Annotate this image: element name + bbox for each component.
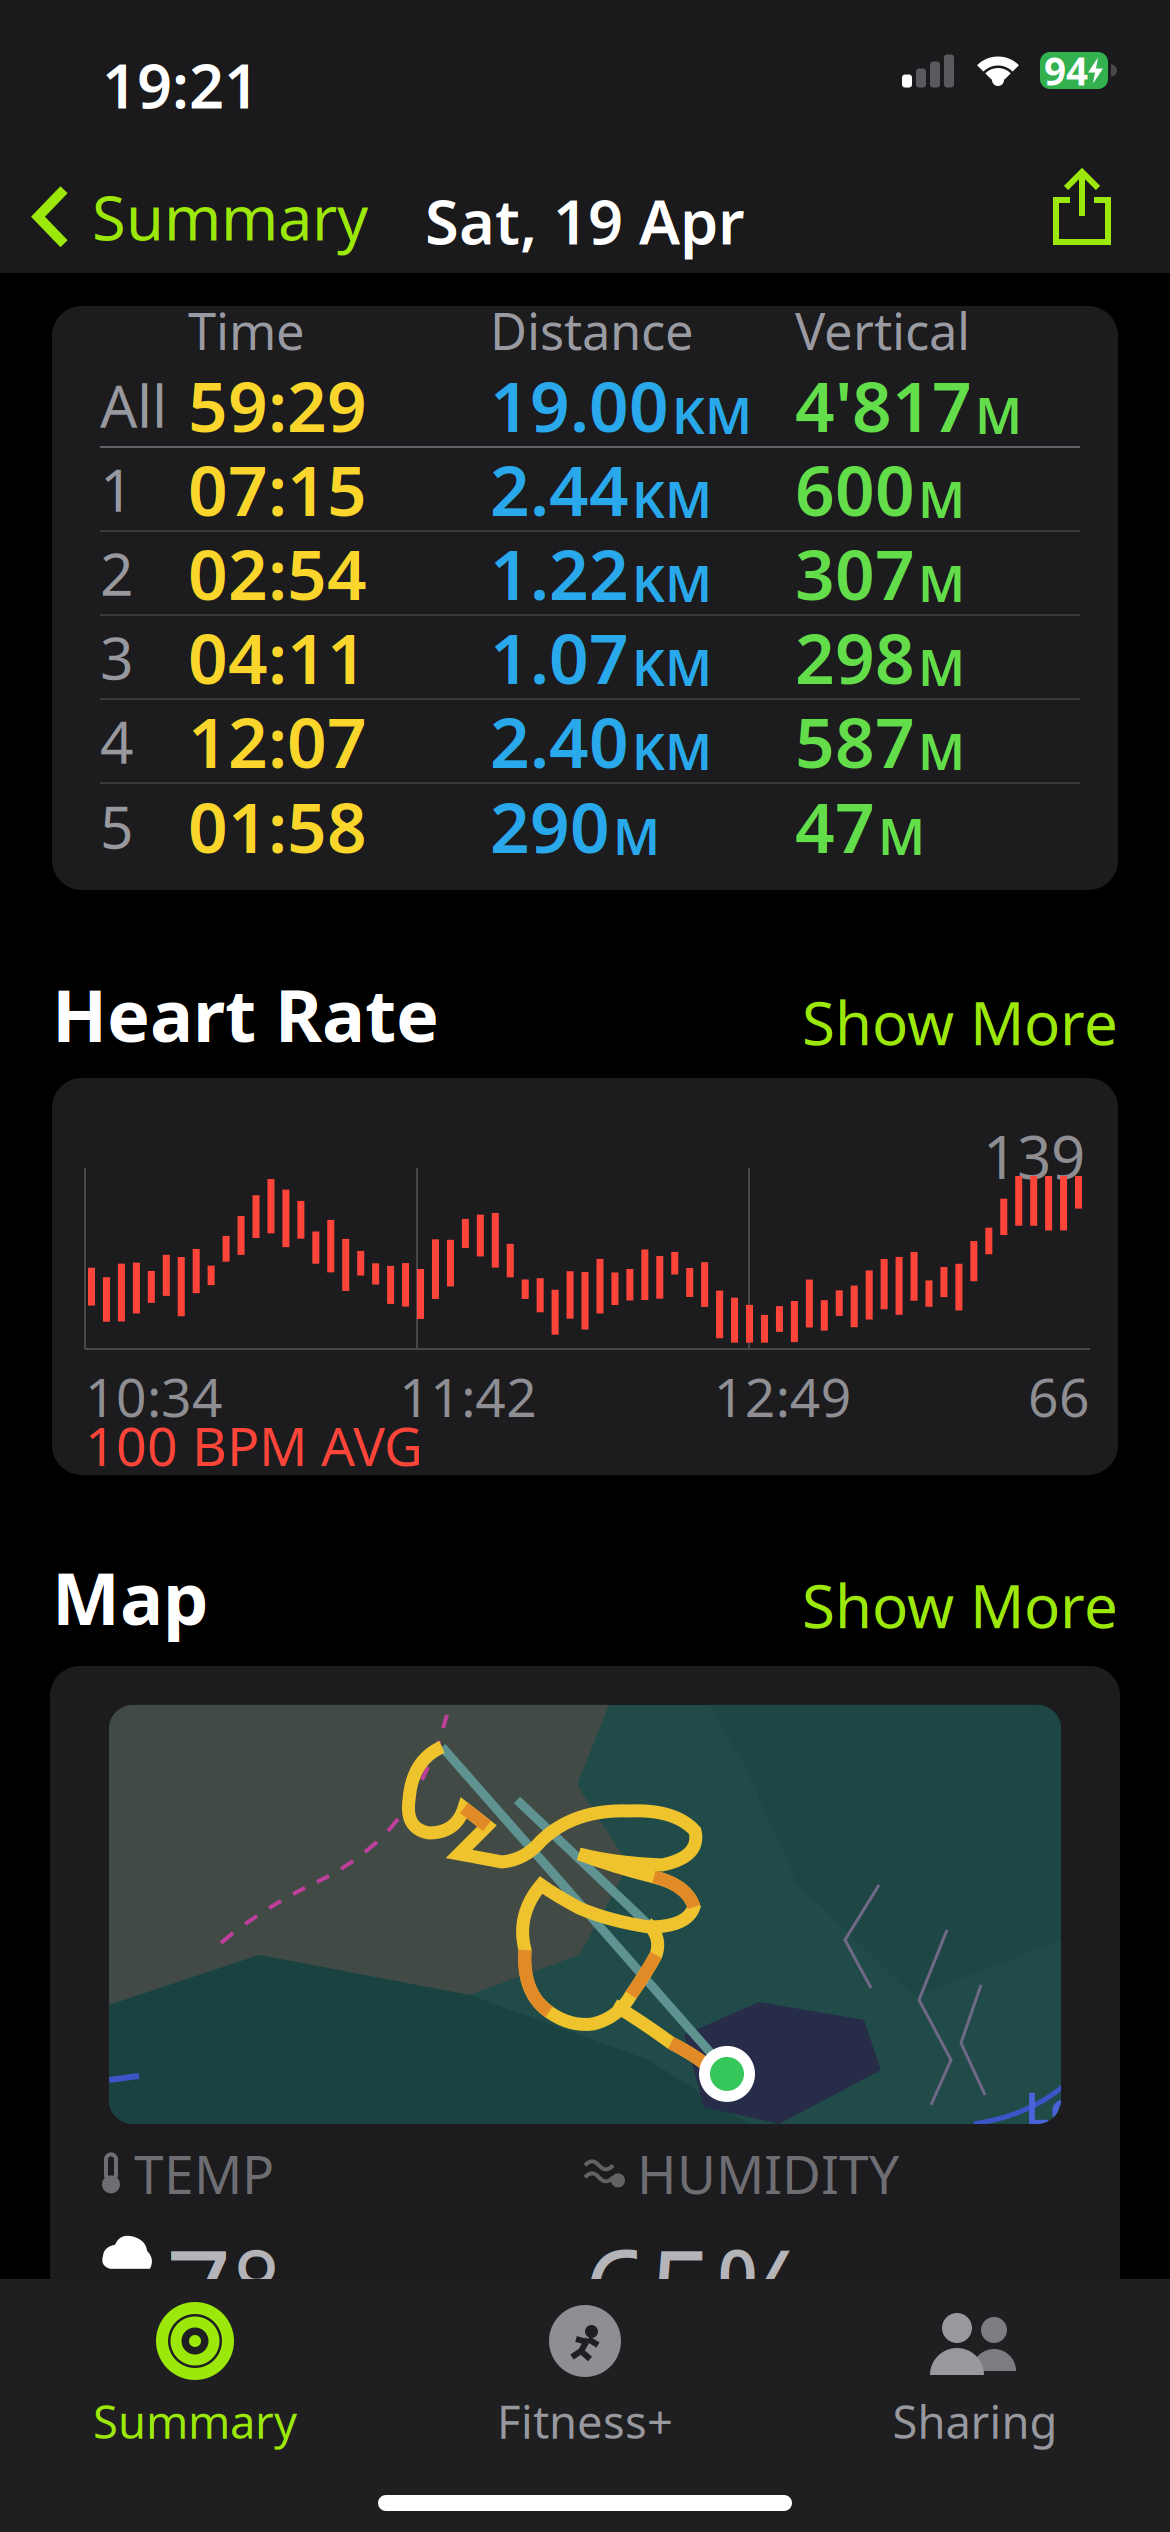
staticText: 4 — [100, 702, 134, 780]
staticText: Fitness+ — [497, 2391, 673, 2451]
button[interactable]: Summary — [0, 2303, 390, 2451]
staticText: 10:34 — [85, 1361, 223, 1432]
button[interactable]: Share — [1052, 170, 1112, 246]
staticText: Vertical — [795, 297, 970, 364]
staticText: Heart Rate — [52, 966, 439, 1062]
staticText: 11:42 — [399, 1361, 537, 1432]
staticText: 600 — [795, 443, 915, 535]
staticText: Sharing — [892, 2391, 1057, 2451]
staticText: 587 — [795, 695, 915, 787]
staticText: KM — [632, 717, 712, 784]
staticText: 02:54 — [188, 527, 367, 619]
staticText: 307 — [795, 527, 915, 619]
staticText: 100 BPM AVG — [85, 1410, 423, 1481]
staticText: 1.07 — [490, 611, 629, 703]
staticText: Show More — [802, 1565, 1118, 1645]
staticText: M — [975, 381, 1022, 448]
staticText: TEMP — [134, 2138, 274, 2209]
button[interactable]: Fitness+ — [390, 2303, 780, 2451]
button[interactable]: Sharing — [780, 2303, 1170, 2451]
staticText: 4'817 — [795, 359, 972, 451]
button[interactable]: Show More — [802, 1565, 1118, 1645]
staticText: 12:07 — [188, 695, 367, 787]
staticText: M — [918, 465, 965, 532]
staticText: Show More — [802, 982, 1118, 1062]
button[interactable]: Show More — [802, 982, 1118, 1062]
staticText: 3 — [100, 618, 134, 696]
staticText: KM — [632, 633, 712, 700]
staticText: 01:58 — [188, 780, 367, 872]
staticText: 1 — [100, 450, 134, 528]
staticText: M — [878, 802, 925, 869]
staticText: M — [918, 717, 965, 784]
staticText: M — [918, 549, 965, 616]
staticText: M — [918, 633, 965, 700]
button[interactable]: Summary — [34, 176, 368, 257]
staticText: Distance — [490, 297, 694, 364]
staticText: 94 — [1044, 45, 1088, 96]
staticText: 66 — [1028, 1361, 1090, 1432]
staticText: 19.00 — [490, 359, 669, 451]
staticText: 1.22 — [490, 527, 629, 619]
staticText: KM — [632, 465, 712, 532]
staticText: 59:29 — [188, 359, 367, 451]
staticText: Map — [52, 1549, 209, 1645]
staticText: KM — [672, 381, 752, 448]
staticText: Time — [188, 297, 305, 364]
staticText: 298 — [795, 611, 915, 703]
staticText: Sat, 19 Apr — [425, 180, 745, 261]
staticText: 139 — [983, 1116, 1085, 1196]
staticText: 7° — [166, 2213, 281, 2365]
staticText: 47 — [795, 780, 875, 872]
staticText: Lo — [1025, 2077, 1078, 2137]
staticText: 04:11 — [188, 611, 367, 703]
staticText: Summary — [93, 2391, 297, 2451]
staticText: All — [100, 366, 167, 444]
staticText: 2.40 — [490, 695, 629, 787]
staticText: Summary — [92, 176, 368, 257]
staticText: 65% — [583, 2213, 810, 2365]
staticText: 2 — [100, 534, 134, 612]
staticText: 2.44 — [490, 443, 629, 535]
staticText: 5 — [100, 787, 134, 865]
staticText: 19:21 — [102, 44, 259, 125]
staticText: 07:15 — [188, 443, 367, 535]
staticText: 12:49 — [714, 1361, 852, 1432]
staticText: KM — [632, 549, 712, 616]
staticText: 290 — [490, 780, 610, 872]
staticText: HUMIDITY — [637, 2138, 899, 2209]
staticText: M — [613, 802, 660, 869]
